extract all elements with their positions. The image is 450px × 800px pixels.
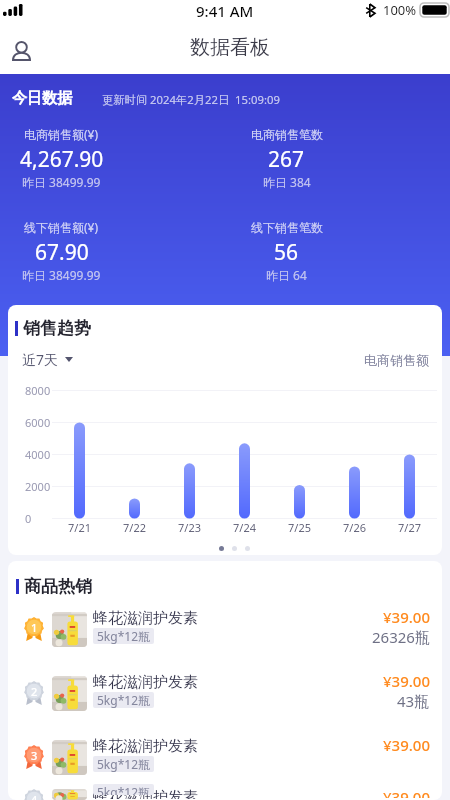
button[interactable]: 3	[8, 725, 442, 789]
staticText: 9:41 AM	[196, 1, 254, 21]
staticText: 蜂花滋润护发素	[93, 737, 198, 756]
staticText: ¥39.00	[383, 671, 430, 691]
staticText: 2000	[25, 479, 51, 494]
staticText: 近7天	[22, 350, 59, 369]
staticText: 5kg*12瓶	[97, 628, 150, 644]
staticText: 7/21	[68, 520, 91, 535]
staticText: 67.90	[35, 238, 89, 264]
staticText: 商品热销	[24, 576, 92, 597]
staticText: ¥39.00	[383, 607, 430, 627]
staticText: 销售趋势	[23, 318, 91, 339]
staticText: 2	[31, 684, 38, 699]
staticText: 3	[31, 748, 38, 763]
button[interactable]: 2	[8, 661, 442, 725]
staticText: 今日数据	[12, 89, 72, 108]
staticText: 蜂花滋润护发素	[93, 788, 198, 799]
staticText: 数据看板	[190, 35, 270, 60]
staticText: 7/23	[178, 520, 201, 535]
staticText: ¥39.00	[383, 787, 430, 798]
staticText: 蜂花滋润护发素	[93, 609, 198, 628]
staticText: ¥39.00	[383, 735, 430, 755]
staticText: 昨日 38499.99	[22, 267, 101, 283]
button[interactable]: 4	[8, 789, 442, 800]
staticText: 26326瓶	[372, 627, 430, 647]
staticText: 4000	[25, 447, 51, 462]
staticText: 43瓶	[397, 691, 430, 711]
staticText: 昨日 38499.99	[22, 174, 101, 190]
staticText: 4	[31, 792, 38, 800]
staticText: 100%	[383, 1, 417, 19]
staticText: 0	[25, 511, 32, 526]
staticText: 4,267.90	[20, 145, 104, 171]
staticText: 电商销售笔数	[251, 127, 323, 142]
staticText: 更新时间 2024年2月22日 15:09:09	[102, 92, 280, 107]
staticText: 电商销售额	[364, 352, 429, 368]
staticText: 1	[31, 620, 38, 635]
staticText: 电商销售额(¥)	[24, 126, 99, 142]
staticText: 5kg*12瓶	[97, 692, 150, 708]
staticText: 线下销售额(¥)	[24, 219, 99, 235]
staticText: 267	[268, 145, 305, 171]
staticText: 5kg*12瓶	[97, 756, 150, 772]
staticText: 线下销售笔数	[251, 220, 323, 235]
staticText: 5kg*12瓶	[97, 784, 150, 795]
staticText: 56	[274, 238, 299, 264]
button[interactable]: 近7天	[22, 350, 73, 369]
staticText: 昨日 64	[266, 267, 307, 283]
staticText: 蜂花滋润护发素	[93, 673, 198, 692]
staticText: 8000	[25, 383, 51, 398]
button[interactable]: Profile	[2, 32, 40, 70]
staticText: 7/22	[123, 520, 146, 535]
staticText: 7/24	[233, 520, 256, 535]
staticText: 7/25	[288, 520, 311, 535]
button[interactable]: 1	[8, 597, 442, 661]
staticText: 7/27	[398, 520, 421, 535]
staticText: 6000	[25, 415, 51, 430]
staticText: 7/26	[343, 520, 366, 535]
staticText: 昨日 384	[263, 174, 311, 190]
